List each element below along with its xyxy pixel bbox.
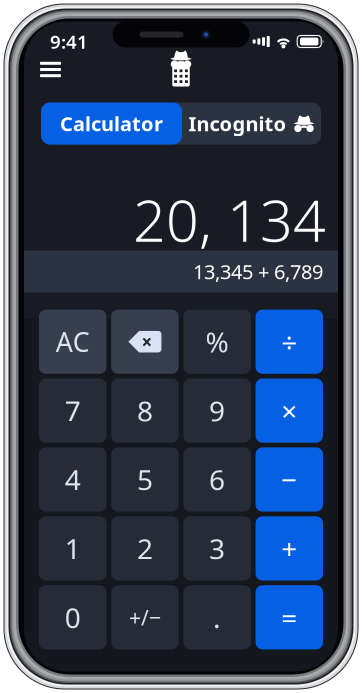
staticText: − bbox=[281, 461, 297, 498]
button[interactable]: Calculator bbox=[41, 102, 182, 144]
staticText: AC bbox=[56, 324, 90, 359]
button[interactable]: 5 bbox=[111, 447, 179, 512]
button[interactable]: . bbox=[183, 585, 251, 649]
staticText: = bbox=[281, 599, 297, 636]
button[interactable]: Incognito bbox=[182, 102, 321, 144]
button[interactable]: 6 bbox=[183, 447, 251, 512]
staticText: % bbox=[206, 323, 229, 360]
staticText: +/− bbox=[129, 603, 161, 631]
button[interactable]: AC bbox=[39, 310, 106, 374]
button[interactable]: Menu bbox=[31, 51, 70, 88]
button[interactable]: × bbox=[256, 378, 323, 443]
button[interactable]: 1 bbox=[39, 516, 106, 580]
staticText: 5 bbox=[137, 461, 153, 498]
button[interactable]: 9 bbox=[183, 378, 251, 443]
staticText: 9 bbox=[209, 392, 225, 429]
button[interactable]: +/− bbox=[111, 585, 179, 649]
staticText: 7 bbox=[65, 392, 81, 429]
button[interactable]: 2 bbox=[111, 516, 179, 580]
staticText: 0 bbox=[65, 599, 81, 636]
staticText: 4 bbox=[65, 461, 81, 498]
button[interactable]: = bbox=[256, 585, 323, 649]
button[interactable]: Backspace bbox=[111, 310, 179, 374]
button[interactable]: + bbox=[256, 516, 323, 580]
staticText: + bbox=[281, 530, 297, 567]
staticText: 2 bbox=[137, 530, 153, 567]
button[interactable]: % bbox=[183, 310, 251, 374]
staticText: 8 bbox=[137, 392, 153, 429]
button[interactable]: − bbox=[256, 447, 323, 512]
staticText: ÷ bbox=[281, 323, 297, 360]
staticText: 1 bbox=[65, 530, 81, 567]
staticText: Incognito bbox=[188, 110, 286, 137]
staticText: × bbox=[141, 329, 152, 354]
button[interactable]: 0 bbox=[39, 585, 106, 649]
staticText: 20, 134 bbox=[133, 181, 326, 257]
staticText: 13,345 + 6,789 bbox=[193, 258, 323, 285]
staticText: × bbox=[281, 392, 297, 429]
button[interactable]: 7 bbox=[39, 378, 106, 443]
staticText: 6 bbox=[209, 461, 225, 498]
staticText: . bbox=[213, 599, 221, 636]
button[interactable]: 3 bbox=[183, 516, 251, 580]
button[interactable]: 4 bbox=[39, 447, 106, 512]
staticText: Calculator bbox=[60, 110, 163, 137]
staticText: 3 bbox=[209, 530, 225, 567]
button[interactable]: 8 bbox=[111, 378, 179, 443]
button[interactable]: ÷ bbox=[256, 310, 323, 374]
staticText: 9:41 bbox=[50, 29, 88, 54]
